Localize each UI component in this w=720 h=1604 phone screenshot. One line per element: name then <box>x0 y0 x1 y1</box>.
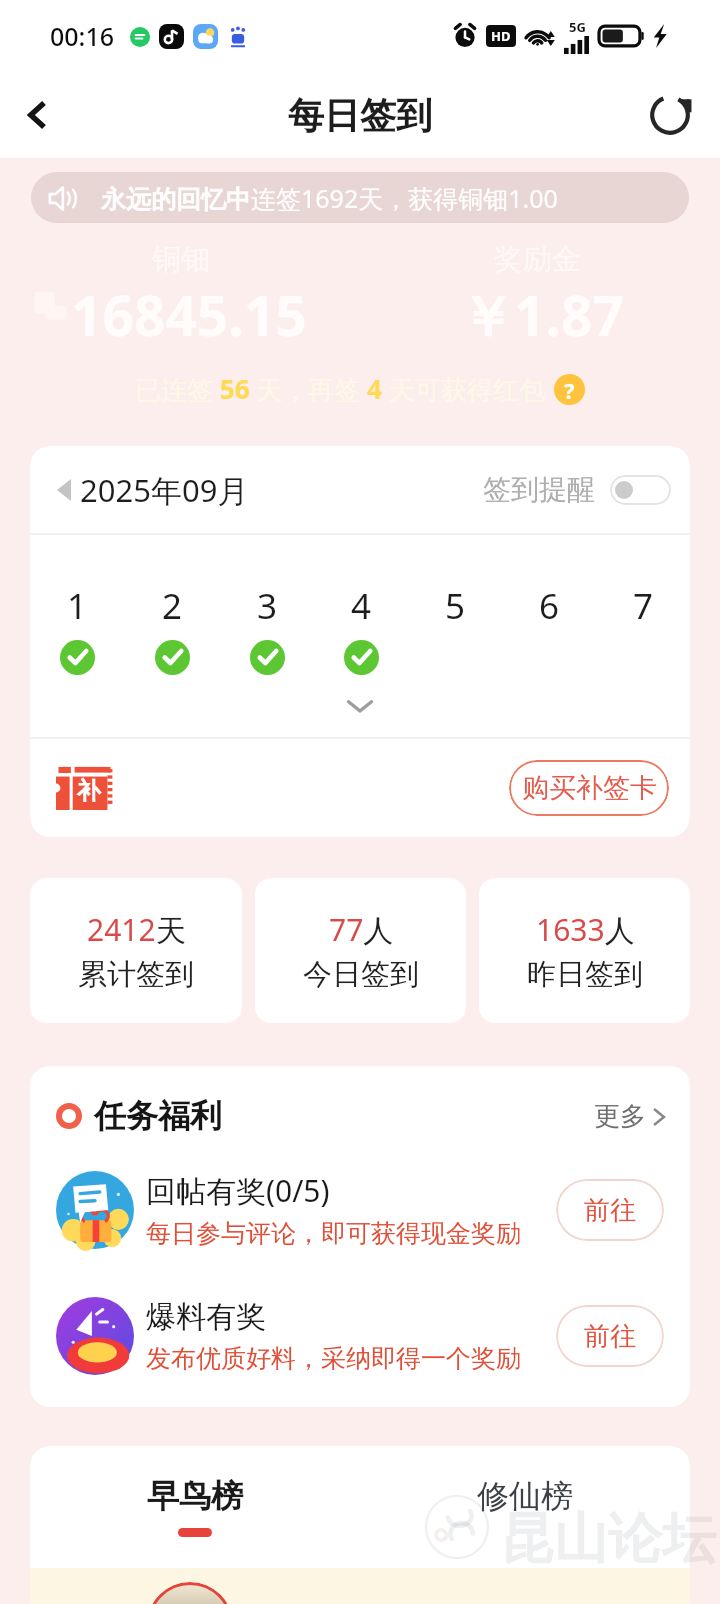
staticText: 永远的回忆中连签1692天，获得铜钿1.00 <box>101 181 558 215</box>
button[interactable]: 1633人 <box>479 878 690 1023</box>
staticText: 早鸟榜 <box>147 1476 243 1516</box>
staticText: 1 <box>67 582 88 630</box>
staticText: 每日签到 <box>288 93 432 138</box>
staticText: 昨日签到 <box>527 956 643 993</box>
staticText: 补 <box>77 776 101 806</box>
staticText: 16845.15 <box>71 277 307 352</box>
button[interactable]: 早鸟榜 <box>30 1446 360 1568</box>
staticText: 1633人 <box>536 909 635 950</box>
staticText: 每日参与评论，即可获得现金奖励 <box>146 1218 521 1249</box>
staticText: 累计签到 <box>78 956 194 993</box>
staticText: 发布优质好料，采纳即得一个奖励 <box>146 1343 521 1374</box>
staticText: 已连签 56 天，再签 4 天可获得红包 <box>135 371 545 407</box>
staticText: 2 <box>162 582 183 630</box>
staticText: HD <box>491 27 511 45</box>
button[interactable]: 前往 <box>556 1179 664 1241</box>
staticText: 任务福利 <box>94 1096 222 1136</box>
button[interactable]: 2412天 <box>30 878 242 1023</box>
button[interactable]: 5 <box>408 582 502 675</box>
button[interactable]: 1 <box>30 582 125 675</box>
staticText: 7 <box>633 582 654 630</box>
button[interactable]: Expand calendar <box>347 699 373 713</box>
staticText: 前往 <box>584 1194 636 1227</box>
staticText: 2025年09月 <box>80 469 249 511</box>
button[interactable]: Help <box>554 374 585 405</box>
staticText: 签到提醒 <box>483 472 595 507</box>
staticText: 前往 <box>584 1320 636 1353</box>
button[interactable]: Back <box>8 85 68 145</box>
staticText: ? <box>564 375 575 405</box>
button[interactable]: 永远的回忆中连签1692天，获得铜钿1.00 <box>31 172 689 223</box>
button[interactable]: 爆料有奖 <box>56 1297 664 1375</box>
staticText: 5 <box>445 582 466 630</box>
button[interactable]: Refresh <box>642 87 698 143</box>
button[interactable]: 4 <box>314 582 408 675</box>
button[interactable]: 6 <box>502 582 596 675</box>
staticText: 今日签到 <box>303 956 419 993</box>
staticText: 4 <box>351 582 372 630</box>
button[interactable]: 更多 <box>594 1100 666 1133</box>
button[interactable]: 7 <box>596 582 690 675</box>
staticText: 更多 <box>594 1100 646 1133</box>
button[interactable]: Sign-in reminder toggle <box>610 475 671 505</box>
staticText: 6 <box>539 582 560 630</box>
staticText: 5G <box>569 18 586 36</box>
staticText: 2412天 <box>87 909 186 950</box>
button[interactable]: 2 <box>125 582 220 675</box>
button[interactable]: 3 <box>220 582 314 675</box>
staticText: 3 <box>257 582 278 630</box>
staticText: 爆料有奖 <box>146 1298 266 1336</box>
button[interactable]: 前往 <box>556 1305 664 1367</box>
staticText: 修仙榜 <box>477 1476 573 1516</box>
button[interactable]: 修仙榜 <box>360 1446 690 1568</box>
staticText: 铜钿 <box>152 241 210 278</box>
staticText: 00:16 <box>50 19 115 53</box>
staticText: 回帖有奖(0/5) <box>146 1170 330 1211</box>
staticText: 奖励金 <box>494 241 581 278</box>
staticText: 77人 <box>329 909 394 950</box>
staticText: 昆山论坛 <box>500 1505 720 1573</box>
staticText: 购买补签卡 <box>522 771 657 805</box>
button[interactable]: 回帖有奖(0/5) <box>56 1170 664 1249</box>
button[interactable]: 购买补签卡 <box>509 760 669 816</box>
staticText: ￥1.87 <box>459 277 624 352</box>
button[interactable]: 77人 <box>255 878 466 1023</box>
